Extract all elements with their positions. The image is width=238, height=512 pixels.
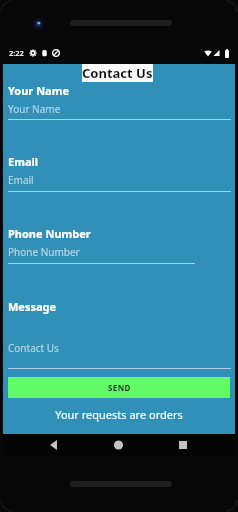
staticText: Your Name	[8, 102, 61, 116]
button[interactable]: Contact Us	[82, 64, 153, 82]
button[interactable]: Phone Number	[8, 241, 231, 264]
staticText: Email	[8, 173, 34, 187]
staticText: SEND	[108, 382, 131, 393]
staticText: Your Name	[8, 83, 69, 98]
staticText: Contact Us	[8, 341, 59, 355]
button[interactable]: Back	[33, 434, 78, 456]
staticText: Message	[8, 299, 57, 314]
staticText: Your requests are orders	[3, 407, 235, 422]
staticText: Email	[8, 154, 39, 169]
button[interactable]: Your Name	[8, 98, 231, 120]
staticText: Contact Us	[82, 64, 153, 82]
button[interactable]: Recents	[161, 434, 206, 456]
button[interactable]: Email	[8, 169, 231, 192]
button[interactable]: SEND	[8, 377, 230, 398]
staticText: Phone Number	[8, 245, 80, 259]
button[interactable]: Home	[96, 434, 141, 456]
staticText: Phone Number	[8, 226, 91, 241]
staticText: 2:22	[9, 48, 24, 58]
